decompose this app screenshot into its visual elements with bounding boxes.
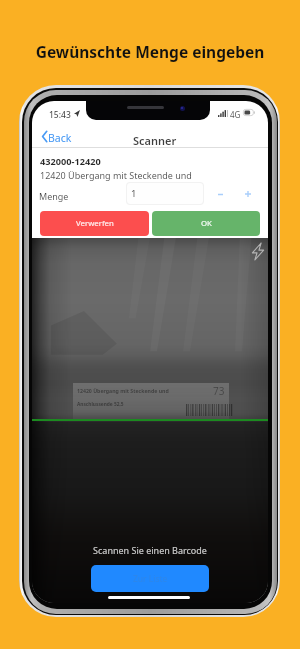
- button[interactable]: Verwerfen: [40, 211, 149, 236]
- staticText: 4G: [230, 109, 241, 120]
- staticText: Menge: [39, 190, 69, 202]
- staticText: 12420 Übergang mit Steckende und: [40, 169, 192, 181]
- button[interactable]: Menge verringern: [210, 184, 230, 204]
- staticText: 73: [213, 384, 225, 398]
- button[interactable]: Blitz: [246, 239, 268, 263]
- button[interactable]: Back: [38, 127, 78, 147]
- staticText: OK: [201, 218, 212, 229]
- staticText: Scanner: [133, 133, 177, 148]
- staticText: 1: [131, 187, 137, 200]
- staticText: 432000-12420: [40, 155, 101, 168]
- button[interactable]: 1: [127, 183, 203, 204]
- button[interactable]: OK: [152, 211, 260, 236]
- staticText: Anschlussende 52,5: [77, 401, 124, 408]
- staticText: Back: [48, 131, 72, 145]
- staticText: Gewünschte Menge eingeben: [0, 41, 300, 62]
- staticText: 15:43: [49, 109, 71, 121]
- staticText: Scannen Sie einen Barcode: [32, 544, 268, 556]
- staticText: 12420 Übergang mit Steckende und: [77, 387, 169, 394]
- staticText: Verwerfen: [76, 218, 114, 229]
- button[interactable]: Zur Liste: [91, 565, 209, 592]
- staticText: Zur Liste: [133, 573, 168, 585]
- button[interactable]: Menge erhöhen: [238, 184, 258, 204]
